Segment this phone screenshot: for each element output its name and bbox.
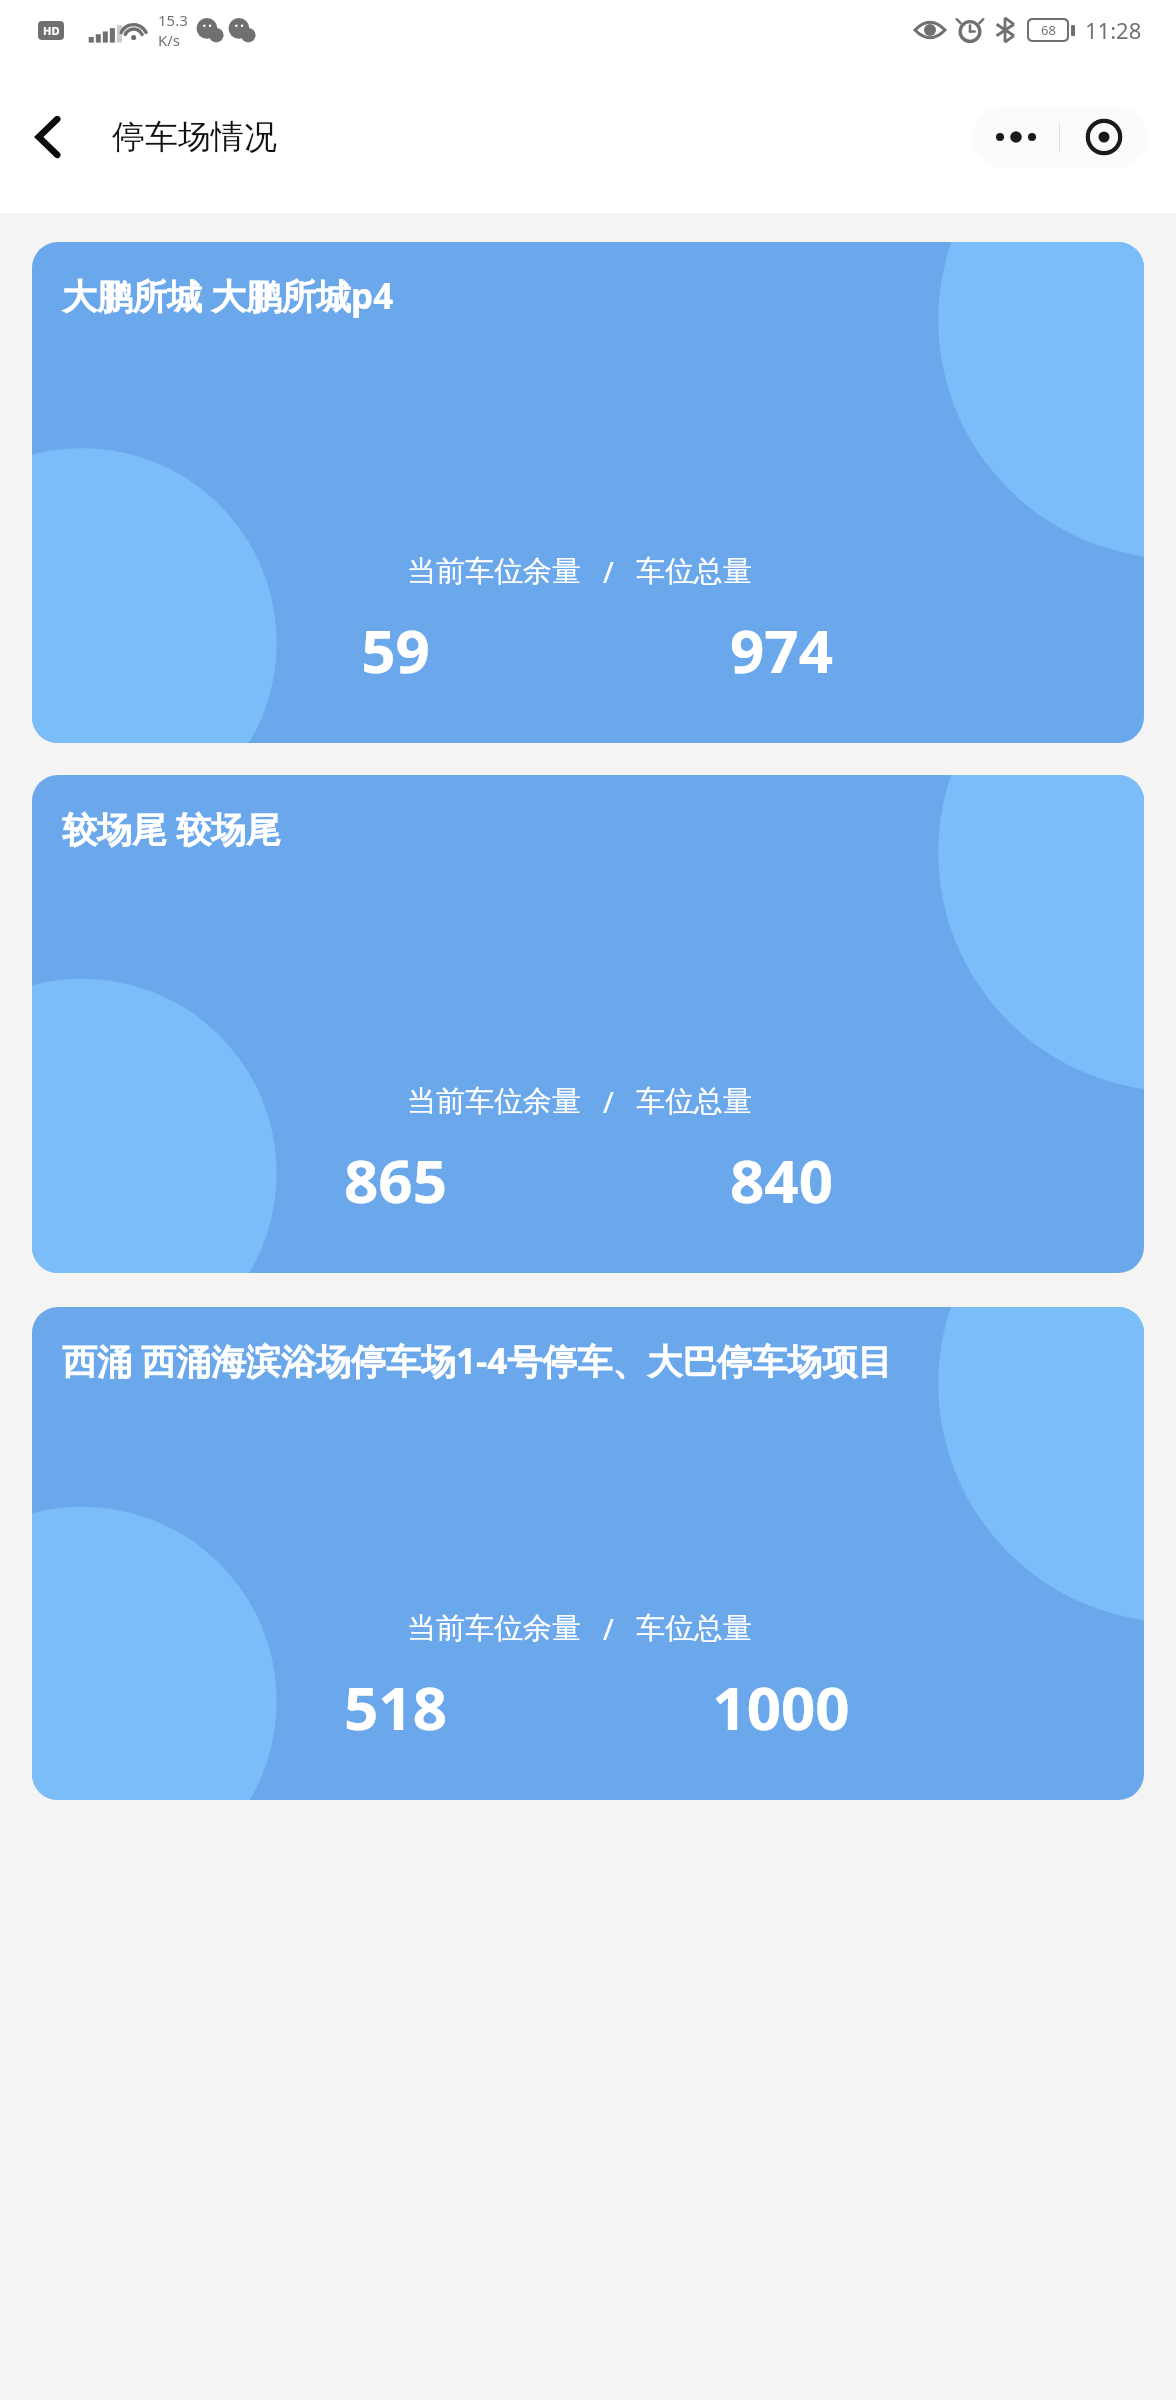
- staticText: 当前车位余量: [407, 1083, 581, 1120]
- button[interactable]: 西涌 西涌海滨浴场停车场1-4号停车、大巴停车场项目: [32, 1307, 1144, 1800]
- staticText: 11:28: [1085, 15, 1142, 45]
- button[interactable]: Back: [16, 105, 80, 169]
- button[interactable]: More: [972, 106, 1059, 168]
- staticText: 较场尾 较场尾: [62, 805, 1114, 853]
- staticText: 840: [730, 1139, 833, 1221]
- staticText: 停车场情况: [112, 116, 277, 158]
- staticText: /: [603, 1082, 614, 1121]
- staticText: 车位总量: [636, 553, 752, 590]
- staticText: 西涌 西涌海滨浴场停车场1-4号停车、大巴停车场项目: [62, 1337, 1114, 1385]
- staticText: 当前车位余量: [407, 553, 581, 590]
- staticText: 车位总量: [636, 1083, 752, 1120]
- staticText: 当前车位余量: [407, 1610, 581, 1647]
- staticText: K/s: [158, 30, 181, 50]
- staticText: 68: [1041, 21, 1056, 39]
- staticText: 大鹏所城 大鹏所城p4: [62, 272, 1114, 320]
- button[interactable]: 较场尾 较场尾: [32, 775, 1144, 1273]
- staticText: 15.3: [158, 10, 188, 30]
- staticText: 865: [344, 1139, 447, 1221]
- staticText: HD: [43, 23, 60, 38]
- staticText: 1000: [712, 1666, 850, 1748]
- staticText: /: [603, 1609, 614, 1648]
- staticText: /: [603, 552, 614, 591]
- staticText: 车位总量: [636, 1610, 752, 1647]
- staticText: 974: [730, 609, 833, 691]
- staticText: 518: [344, 1666, 447, 1748]
- button[interactable]: Close: [1060, 106, 1148, 168]
- button[interactable]: 大鹏所城 大鹏所城p4: [32, 242, 1144, 743]
- staticText: 59: [361, 609, 430, 691]
